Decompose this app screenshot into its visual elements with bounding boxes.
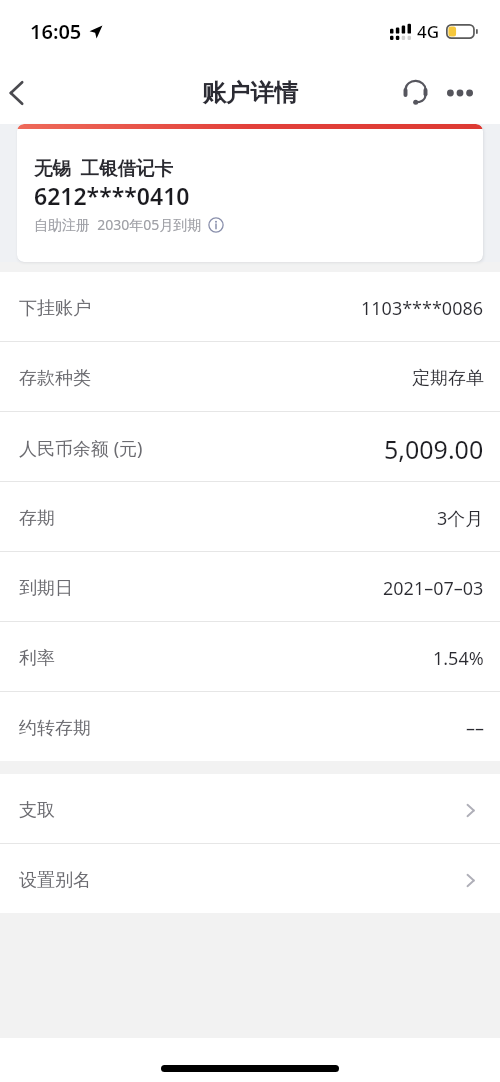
staticText: 支取 (19, 799, 55, 822)
staticText: –– (466, 716, 484, 741)
staticText: 6212****0410 (34, 180, 190, 211)
staticText: 存期 (19, 507, 55, 530)
button[interactable]: 到期日 (0, 552, 500, 622)
staticText: 利率 (19, 647, 55, 670)
staticText: 无锡 工银借记卡 (34, 155, 174, 180)
staticText: 约转存期 (19, 717, 91, 740)
staticText: 1103****0086 (361, 296, 484, 321)
staticText: 账户详情 (202, 78, 298, 108)
staticText: 4G (417, 20, 440, 43)
button[interactable]: 利率 (0, 622, 500, 692)
staticText: 定期存单 (412, 367, 484, 390)
button[interactable]: 支取 (0, 774, 500, 844)
button[interactable]: 存款种类 (0, 342, 500, 412)
staticText: 5,009.00 (384, 432, 484, 466)
staticText: 3个月 (437, 506, 484, 531)
staticText: 下挂账户 (19, 297, 91, 320)
button[interactable]: 约转存期 (0, 692, 500, 761)
staticText: 2021–07–03 (383, 576, 484, 601)
staticText: 16:05 (30, 18, 82, 45)
staticText: 1.54% (433, 646, 484, 671)
button[interactable]: Back (0, 65, 32, 121)
staticText: 设置别名 (19, 869, 91, 892)
staticText: 存款种类 (19, 367, 91, 390)
button[interactable]: 下挂账户 (0, 272, 500, 342)
button[interactable]: More options (443, 69, 477, 117)
button[interactable]: 设置别名 (0, 844, 500, 913)
staticText: 人民币余额 (元) (19, 436, 143, 461)
button[interactable]: Customer service (399, 69, 436, 117)
button[interactable]: 人民币余额 (元) (0, 412, 500, 482)
staticText: 到期日 (19, 577, 73, 600)
button[interactable]: 存期 (0, 482, 500, 552)
staticText: 自助注册 2030年05月到期 (34, 215, 202, 234)
